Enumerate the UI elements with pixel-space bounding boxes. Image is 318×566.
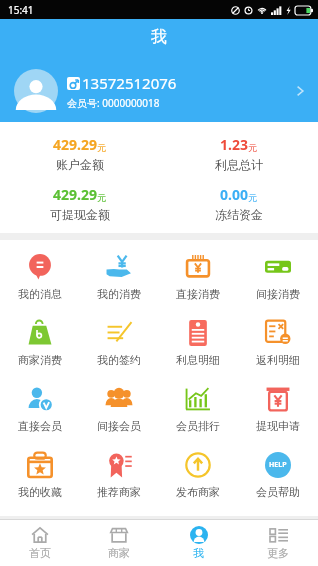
staticText: 会员帮助 (256, 485, 300, 499)
button[interactable]: 直接消费 (158, 248, 238, 305)
button[interactable]: 推荐商家 (79, 446, 158, 503)
button[interactable]: 13572512076 (14, 69, 308, 113)
staticText: 15:41 (8, 3, 34, 17)
button[interactable]: 我的消费 (79, 248, 158, 305)
staticText: 元 (97, 142, 106, 153)
button[interactable]: 间接消费 (238, 248, 318, 305)
button[interactable]: 更多 (238, 520, 318, 566)
button[interactable]: 商家 (79, 520, 158, 566)
button[interactable]: 间接会员 (79, 380, 158, 437)
staticText: 元 (248, 142, 257, 153)
staticText: 我的消费 (97, 287, 141, 301)
staticText: 0.00 (220, 185, 248, 204)
button[interactable]: 会员排行 (158, 380, 238, 437)
staticText: 429.29 (53, 185, 97, 204)
staticText: 1.23 (220, 135, 248, 154)
button[interactable]: 我的签约 (79, 314, 158, 371)
staticText: HELP (269, 460, 287, 470)
staticText: 元 (248, 192, 257, 203)
staticText: 我 (193, 546, 204, 560)
staticText: 会员号: 0000000018 (67, 96, 160, 110)
staticText: 返利明细 (256, 353, 300, 367)
button[interactable]: 429.29 (0, 135, 159, 172)
staticText: 429.29 (53, 135, 97, 154)
staticText: 我的收藏 (18, 485, 62, 499)
staticText: 我的消息 (18, 287, 62, 301)
staticText: 直接消费 (176, 287, 220, 301)
button[interactable]: 1.23 (159, 135, 318, 172)
button[interactable]: 返利明细 (238, 314, 318, 371)
staticText: 商家 (108, 546, 130, 560)
button[interactable]: 我的消息 (0, 248, 79, 305)
button[interactable]: 我 (158, 520, 238, 566)
button[interactable]: 我的收藏 (0, 446, 79, 503)
button[interactable]: 提现申请 (238, 380, 318, 437)
staticText: 会员排行 (176, 419, 220, 433)
staticText: 发布商家 (176, 485, 220, 499)
staticText: 间接会员 (97, 419, 141, 433)
staticText: 冻结资金 (215, 207, 263, 222)
staticText: 推荐商家 (97, 485, 141, 499)
button[interactable]: HELP (238, 446, 318, 503)
button[interactable]: 直接会员 (0, 380, 79, 437)
staticText: 我 (151, 27, 167, 47)
staticText: 利息总计 (215, 157, 263, 172)
staticText: 13572512076 (82, 73, 177, 93)
staticText: 商家消费 (18, 353, 62, 367)
staticText: 更多 (267, 546, 289, 560)
button[interactable]: 商家消费 (0, 314, 79, 371)
button[interactable]: 429.29 (0, 185, 159, 222)
staticText: 账户金额 (56, 157, 104, 172)
button[interactable]: 利息明细 (158, 314, 238, 371)
staticText: 直接会员 (18, 419, 62, 433)
staticText: 利息明细 (176, 353, 220, 367)
staticText: 元 (97, 192, 106, 203)
staticText: 我的签约 (97, 353, 141, 367)
button[interactable]: 首页 (0, 520, 79, 566)
staticText: 首页 (29, 546, 51, 560)
staticText: 提现申请 (256, 419, 300, 433)
button[interactable]: 发布商家 (158, 446, 238, 503)
staticText: 可提现金额 (50, 207, 110, 222)
button[interactable]: 0.00 (159, 185, 318, 222)
staticText: 间接消费 (256, 287, 300, 301)
